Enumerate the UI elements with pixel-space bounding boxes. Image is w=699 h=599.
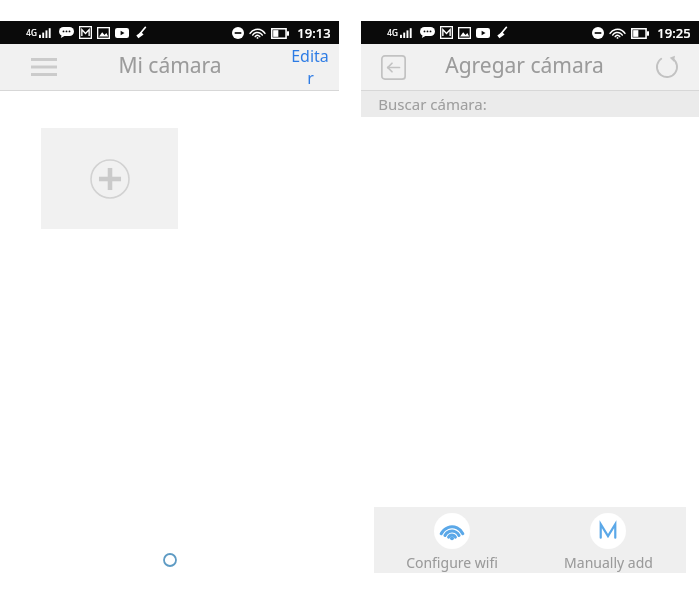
button[interactable]: Back bbox=[375, 49, 411, 85]
staticText: Manually add bbox=[564, 553, 653, 572]
staticText: Edita bbox=[291, 45, 329, 67]
staticText: Buscar cámara: bbox=[378, 94, 487, 114]
staticText: Configure wifi bbox=[406, 553, 498, 572]
button[interactable]: Buscar cámara: bbox=[361, 91, 699, 117]
staticText: 4G bbox=[387, 27, 398, 38]
button[interactable]: Menu bbox=[28, 51, 60, 83]
button[interactable]: Configure wifi bbox=[374, 507, 530, 573]
staticText: 19:25 bbox=[657, 24, 691, 42]
button[interactable]: Refresh bbox=[649, 49, 685, 85]
staticText: Agregar cámara bbox=[445, 51, 604, 80]
button[interactable]: Manually add bbox=[530, 507, 686, 573]
button[interactable]: Edita bbox=[287, 44, 333, 90]
staticText: Mi cámara bbox=[118, 51, 222, 80]
staticText: 19:13 bbox=[297, 24, 331, 42]
button[interactable]: Add camera bbox=[41, 128, 178, 229]
staticText: 4G bbox=[26, 27, 37, 38]
staticText: r bbox=[307, 67, 314, 89]
